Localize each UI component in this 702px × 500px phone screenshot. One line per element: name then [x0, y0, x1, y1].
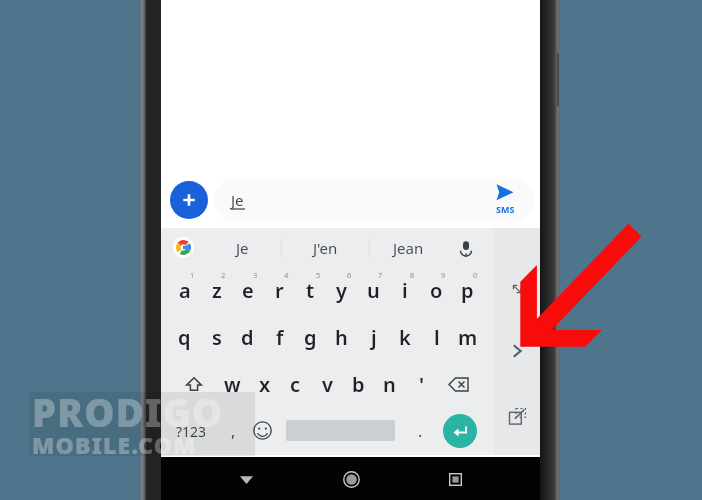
staticText: 2 — [221, 270, 226, 280]
button[interactable]: e — [232, 268, 263, 313]
button[interactable]: r — [264, 268, 295, 313]
button[interactable]: p — [452, 268, 483, 313]
button[interactable]: Back — [239, 472, 254, 487]
button[interactable]: x — [249, 362, 280, 407]
staticText: 6 — [347, 270, 352, 280]
button[interactable]: w — [217, 362, 248, 407]
button[interactable]: ?123 — [165, 409, 217, 453]
button[interactable]: Recents — [449, 473, 462, 486]
button[interactable]: Emoji — [253, 421, 272, 440]
staticText: , — [231, 420, 236, 442]
button[interactable]: a — [169, 268, 200, 313]
button[interactable]: g — [295, 315, 326, 360]
staticText: q — [178, 324, 191, 351]
button[interactable]: Jean — [370, 228, 446, 268]
button[interactable]: s — [201, 315, 232, 360]
staticText: g — [304, 324, 317, 351]
button[interactable]: Resize keyboard — [508, 280, 526, 298]
staticText: Je — [236, 238, 249, 258]
button[interactable]: h — [326, 315, 357, 360]
button[interactable]: j — [358, 315, 389, 360]
staticText: 5 — [316, 270, 321, 280]
staticText: y — [336, 277, 347, 304]
button[interactable]: . — [405, 409, 435, 453]
staticText: i — [402, 277, 408, 304]
button[interactable]: u — [358, 268, 389, 313]
button[interactable]: Shift — [177, 362, 211, 407]
staticText: k — [399, 324, 411, 351]
button[interactable]: q — [169, 315, 200, 360]
staticText: j — [371, 324, 377, 351]
button[interactable]: d — [232, 315, 263, 360]
staticText: v — [322, 371, 333, 398]
button[interactable]: c — [280, 362, 311, 407]
button[interactable]: b — [343, 362, 374, 407]
staticText: w — [224, 371, 241, 398]
staticText: l — [434, 324, 440, 351]
button[interactable]: m — [452, 315, 483, 360]
button[interactable]: f — [264, 315, 295, 360]
staticText: n — [383, 371, 396, 398]
button[interactable]: Add attachment — [170, 181, 208, 219]
button[interactable]: Floating keyboard — [508, 407, 527, 426]
button[interactable]: Je — [204, 228, 280, 268]
button[interactable]: y — [326, 268, 357, 313]
staticText: ' — [419, 371, 424, 398]
staticText: Jean — [393, 238, 424, 258]
staticText: Je — [231, 190, 244, 210]
button[interactable]: l — [421, 315, 452, 360]
staticText: PRODIGO — [32, 386, 224, 438]
button[interactable]: Voice input — [456, 238, 476, 258]
button[interactable]: Home — [343, 471, 360, 488]
staticText: t — [306, 277, 315, 304]
staticText: r — [275, 277, 284, 304]
staticText: d — [241, 324, 254, 351]
button[interactable]: z — [201, 268, 232, 313]
button[interactable]: ' — [406, 362, 437, 407]
button[interactable]: v — [312, 362, 343, 407]
button[interactable]: t — [295, 268, 326, 313]
button[interactable]: k — [389, 315, 420, 360]
staticText: f — [276, 324, 284, 351]
button[interactable]: i — [389, 268, 420, 313]
button[interactable]: , — [217, 409, 249, 453]
button[interactable]: Je — [214, 177, 534, 223]
staticText: 7 — [378, 270, 383, 280]
staticText: 8 — [410, 270, 415, 280]
staticText: J'en — [313, 238, 338, 258]
staticText: 4 — [284, 270, 289, 280]
button[interactable]: n — [374, 362, 405, 407]
staticText: a — [179, 277, 191, 304]
button[interactable]: J'en — [287, 228, 363, 268]
staticText: 1 — [190, 270, 195, 280]
staticText: . — [418, 420, 423, 442]
staticText: MOBILE.COM — [32, 429, 197, 460]
staticText: o — [430, 277, 443, 304]
staticText: 3 — [253, 270, 258, 280]
staticText: u — [367, 277, 380, 304]
button[interactable]: Send SMS — [496, 183, 518, 215]
button[interactable]: Next — [508, 342, 526, 360]
staticText: 9 — [441, 270, 446, 280]
button[interactable]: Google search — [173, 237, 194, 258]
staticText: x — [259, 371, 271, 398]
staticText: 0 — [473, 270, 478, 280]
staticText: c — [290, 371, 301, 398]
staticText: SMS — [496, 203, 515, 215]
staticText: z — [212, 277, 222, 304]
button[interactable]: Enter — [443, 414, 477, 448]
button[interactable]: o — [421, 268, 452, 313]
staticText: h — [335, 324, 348, 351]
staticText: p — [461, 277, 474, 304]
staticText: e — [242, 277, 254, 304]
staticText: b — [352, 371, 365, 398]
staticText: ?123 — [176, 422, 207, 441]
button[interactable]: Backspace — [441, 362, 477, 407]
staticText: s — [212, 324, 222, 351]
staticText: m — [458, 324, 478, 351]
